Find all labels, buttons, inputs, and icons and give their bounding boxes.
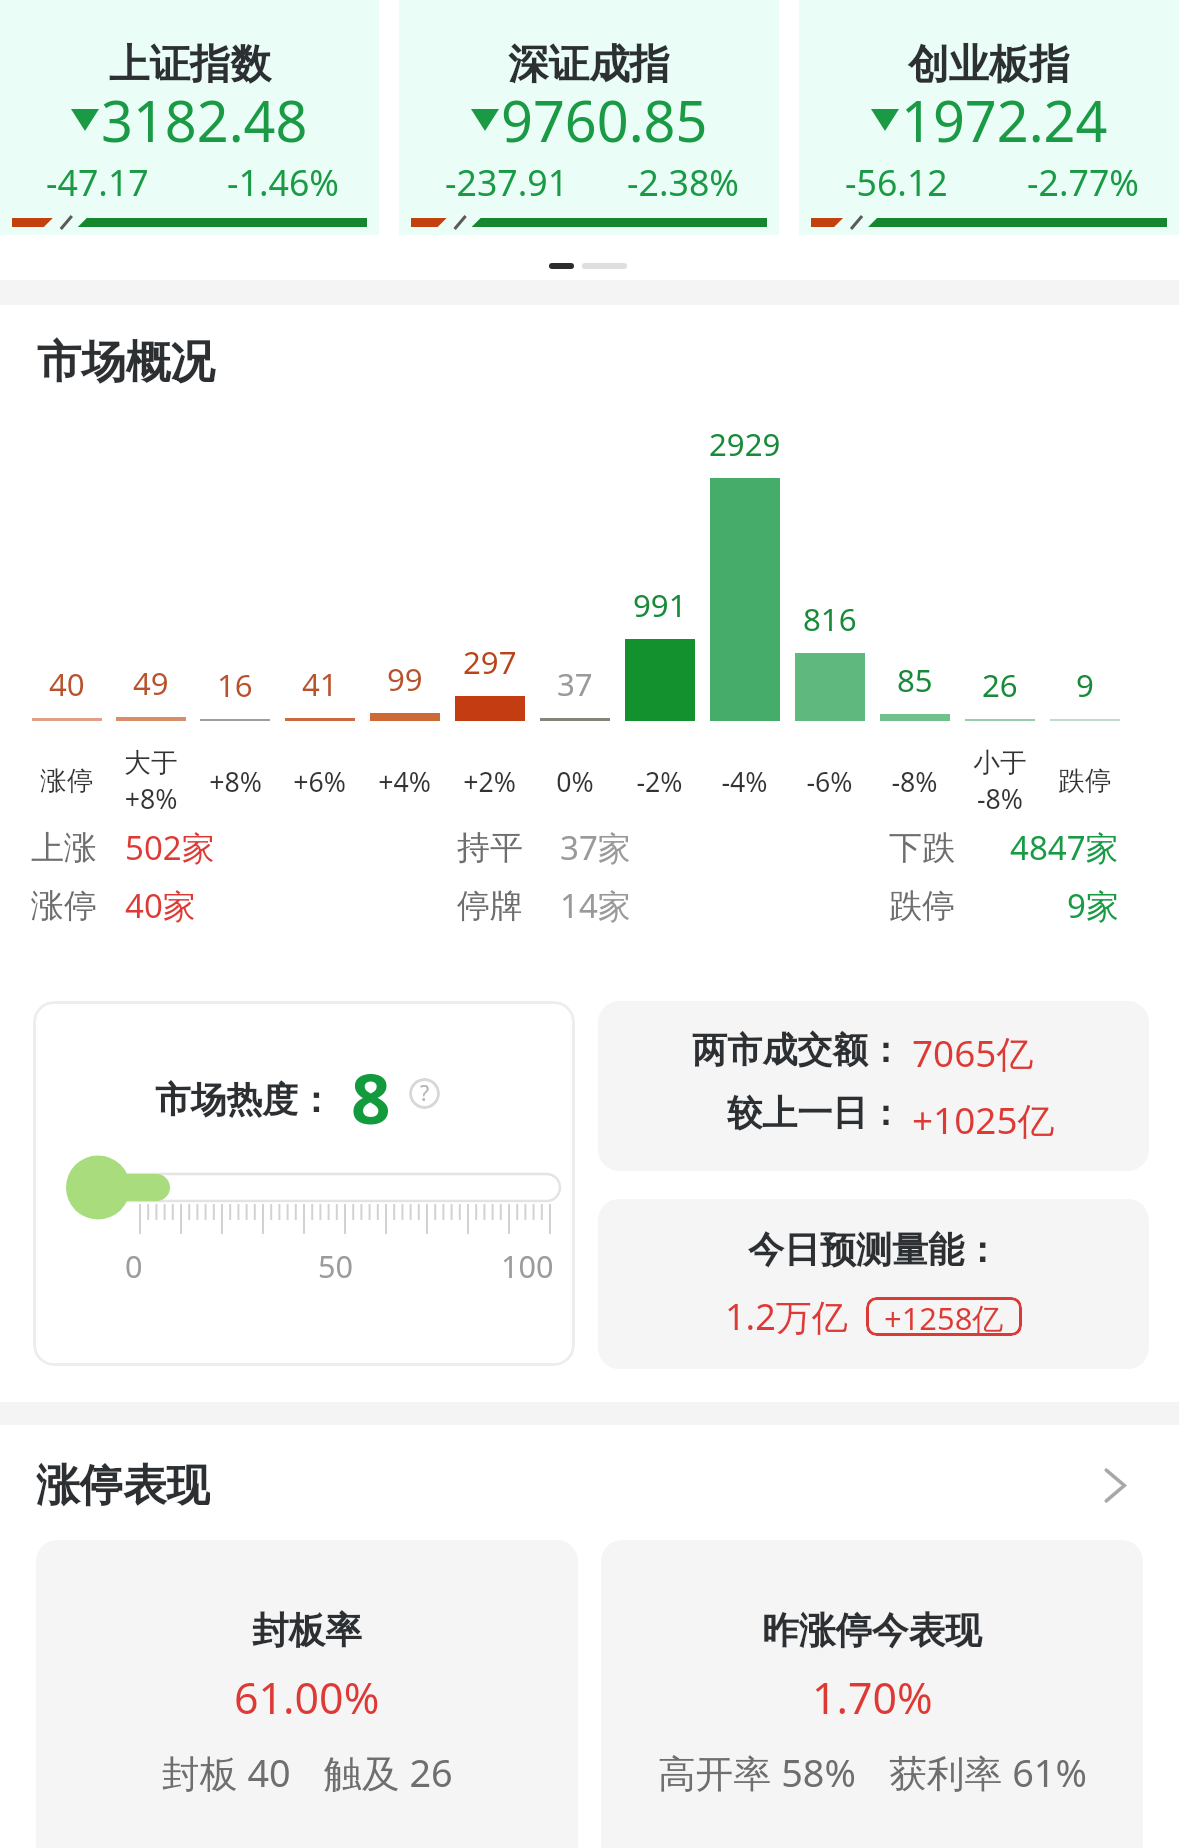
staticText: 1.2万亿	[725, 1292, 848, 1341]
button[interactable]: 创业板指	[799, 0, 1179, 235]
staticText: -47.17	[46, 158, 149, 207]
button[interactable]: 深证成指	[399, 0, 779, 235]
staticText: 涨停	[40, 764, 94, 798]
staticText: +6%	[293, 763, 346, 799]
staticText: 封板 40	[162, 1747, 291, 1799]
staticText: 跌停	[889, 885, 955, 927]
staticText: -56.12	[845, 158, 948, 207]
staticText: 99	[387, 658, 423, 700]
other: 查看涨停表现	[1080, 1458, 1146, 1512]
staticText: 40	[49, 663, 85, 705]
staticText: 9家	[1067, 883, 1119, 928]
staticText: 502家	[125, 825, 215, 870]
button[interactable]: 昨涨停今表现	[601, 1540, 1143, 1848]
staticText: -2.38%	[627, 158, 739, 207]
staticText: 8	[351, 1050, 391, 1144]
staticText: 较上一日：	[727, 1091, 903, 1135]
staticText: 14家	[560, 883, 631, 928]
staticText: 0%	[556, 763, 594, 799]
staticText: 上证指数	[109, 39, 271, 90]
staticText: 49	[133, 662, 169, 704]
staticText: 小于 -8%	[973, 746, 1027, 817]
staticText: -237.91	[445, 158, 569, 207]
button[interactable]: 涨停表现	[36, 1458, 1146, 1512]
button[interactable]: 两市成交额：	[598, 1001, 1149, 1171]
staticText: 下跌	[889, 827, 955, 869]
staticText: 100	[501, 1245, 554, 1287]
staticText: 297	[463, 641, 517, 683]
staticText: 停牌	[457, 885, 523, 927]
staticText: 上涨	[31, 827, 97, 869]
staticText: 大于 +8%	[124, 746, 178, 817]
staticText: 涨停	[31, 885, 97, 927]
staticText: 持平	[457, 827, 523, 869]
staticText: +1258亿	[884, 1297, 1004, 1336]
staticText: 1972.24	[901, 82, 1108, 158]
staticText: 创业板指	[908, 39, 1070, 90]
staticText: -8%	[891, 763, 938, 799]
staticText: 获利率 61%	[889, 1747, 1087, 1799]
staticText: 991	[633, 584, 687, 626]
staticText: 4847家	[1010, 825, 1119, 870]
staticText: 7065亿	[912, 1028, 1034, 1078]
staticText: +2%	[463, 763, 516, 799]
staticText: 1.70%	[812, 1668, 933, 1726]
staticText: 封板率	[252, 1608, 362, 1654]
staticText: -2%	[636, 763, 683, 799]
staticText: 涨停表现	[36, 1458, 210, 1512]
staticText: 0	[125, 1245, 143, 1287]
button[interactable]: 今日预测量能：	[598, 1199, 1149, 1369]
staticText: 50	[318, 1245, 353, 1287]
staticText: -4%	[721, 763, 768, 799]
staticText: -2.77%	[1027, 158, 1139, 207]
staticText: 今日预测量能：	[748, 1227, 1000, 1272]
staticText: 3182.48	[101, 82, 308, 158]
staticText: -6%	[806, 763, 853, 799]
staticText: 816	[803, 598, 857, 640]
staticText: 40家	[125, 883, 196, 928]
staticText: 9	[1076, 664, 1094, 706]
button[interactable]: 上证指数	[0, 0, 379, 235]
button[interactable]: 封板率	[36, 1540, 578, 1848]
staticText: 深证成指	[508, 39, 670, 90]
staticText: 两市成交额：	[692, 1028, 903, 1072]
staticText: -1.46%	[227, 158, 339, 207]
staticText: 16	[217, 664, 253, 706]
staticText: 85	[897, 659, 933, 701]
staticText: +1025亿	[912, 1095, 1055, 1145]
staticText: 37家	[560, 825, 631, 870]
staticText: ?	[420, 1079, 430, 1108]
staticText: 高开率 58%	[658, 1747, 856, 1799]
staticText: 26	[982, 664, 1018, 706]
staticText: 9760.85	[501, 82, 708, 158]
staticText: 41	[302, 663, 338, 705]
staticText: +4%	[378, 763, 431, 799]
staticText: 市场概况	[37, 334, 215, 390]
staticText: 37	[557, 663, 593, 705]
staticText: +8%	[209, 763, 262, 799]
button[interactable]: 市场热度：	[33, 1001, 575, 1366]
staticText: 61.00%	[234, 1668, 380, 1726]
staticText: 昨涨停今表现	[762, 1608, 982, 1654]
staticText: 触及 26	[324, 1747, 453, 1799]
staticText: 市场热度：	[155, 1078, 334, 1123]
staticText: 2929	[709, 423, 781, 465]
staticText: 跌停	[1058, 764, 1112, 798]
